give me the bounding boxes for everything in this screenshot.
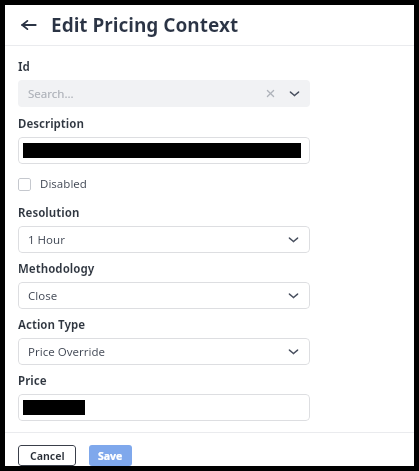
staticText: Save bbox=[98, 449, 123, 463]
button[interactable]: Back bbox=[15, 11, 43, 39]
button[interactable]: Disabled bbox=[18, 176, 93, 192]
button[interactable]: 1 Hour bbox=[18, 226, 310, 253]
button[interactable]: Cancel bbox=[18, 445, 76, 466]
staticText: Resolution bbox=[18, 205, 80, 221]
staticText: Cancel bbox=[30, 449, 65, 463]
button[interactable] bbox=[18, 394, 310, 421]
button[interactable]: Clear bbox=[265, 88, 276, 99]
button[interactable]: Save bbox=[89, 445, 132, 466]
staticText: Description bbox=[18, 116, 84, 132]
staticText: Edit Pricing Context bbox=[51, 12, 239, 38]
staticText: Price Override bbox=[28, 344, 106, 360]
button[interactable] bbox=[18, 137, 310, 164]
staticText: 1 Hour bbox=[28, 232, 65, 248]
button[interactable]: Search... bbox=[18, 80, 310, 107]
staticText: Methodology bbox=[18, 261, 95, 277]
staticText: Close bbox=[28, 288, 58, 304]
staticText: Price bbox=[18, 373, 47, 389]
staticText: Search... bbox=[28, 86, 74, 102]
staticText: Disabled bbox=[40, 176, 87, 192]
staticText: Id bbox=[18, 59, 30, 75]
staticText: Action Type bbox=[18, 317, 86, 333]
button[interactable]: Price Override bbox=[18, 338, 310, 365]
button[interactable]: Close bbox=[18, 282, 310, 309]
